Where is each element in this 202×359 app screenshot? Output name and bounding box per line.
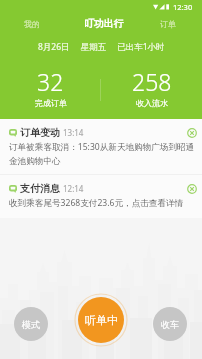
staticText: 听单中 [85,313,118,327]
staticText: 收车 [161,319,179,330]
staticText: 订单变动 [20,126,60,139]
button[interactable]: 模式 [14,307,48,341]
staticText: 叮功出行 [84,18,124,30]
button[interactable]: 收车 [153,307,187,341]
button[interactable]: 听单中 [78,297,124,343]
staticText: 订单被乘客取消：15:30从新天地购物广场到昭通金池购物中心 [9,141,198,167]
button[interactable]: Dismiss [185,182,198,195]
staticText: 13:14 [63,127,84,138]
staticText: 完成订单 [35,98,67,108]
button[interactable]: 支付消息 [0,175,202,218]
staticText: 258 [132,66,172,97]
staticText: 32 [37,66,64,97]
staticText: 收到乘客尾号3268支付23.6元，点击查看详情 [9,197,184,209]
staticText: 模式 [22,319,40,330]
button[interactable]: 订单变动 [0,119,202,174]
staticText: 8月26日 星期五 已出车1小时 [38,41,165,53]
staticText: 12:30 [173,2,193,12]
staticText: 我的 [24,19,40,29]
button[interactable]: 我的 [8,10,55,38]
staticText: 支付消息 [20,182,60,195]
staticText: 12:14 [63,183,84,194]
staticText: 收入流水 [136,98,168,108]
button[interactable]: Dismiss [185,126,198,139]
staticText: 订单 [160,19,176,29]
button[interactable]: 订单 [144,10,191,38]
